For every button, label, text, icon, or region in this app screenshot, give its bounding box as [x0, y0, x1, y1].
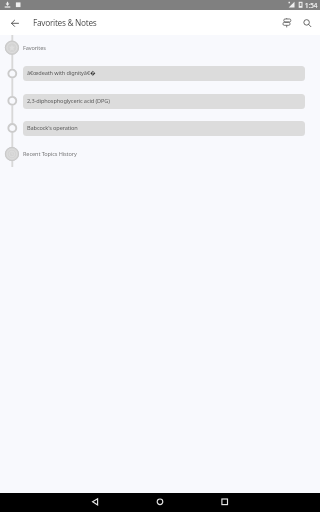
staticText: 1:54 — [305, 1, 318, 9]
staticText: Recent Topics History — [23, 150, 77, 158]
staticText: Favorites — [23, 44, 46, 52]
staticText: â€œdeath with dignityâ€� — [27, 69, 96, 77]
button[interactable]: Babcock's operation — [23, 121, 305, 136]
staticText: Babcock's operation — [27, 124, 78, 132]
button[interactable]: Recent Topics History — [22, 147, 81, 161]
button[interactable]: â€œdeath with dignityâ€� — [23, 66, 305, 81]
button[interactable]: Back — [3, 11, 26, 34]
staticText: 2,3-diphosphoglyceric acid (DPG) — [27, 97, 110, 105]
button[interactable]: Favorites — [22, 41, 50, 55]
button[interactable]: 2,3-diphosphoglyceric acid (DPG) — [23, 94, 305, 109]
staticText: Favorites & Notes — [33, 17, 97, 28]
button[interactable]: Sort — [275, 11, 298, 34]
button[interactable]: Search — [295, 11, 318, 34]
